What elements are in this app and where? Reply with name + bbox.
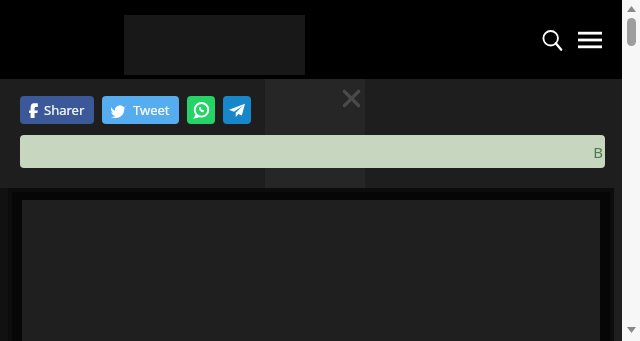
staticText: B: [593, 142, 603, 162]
button[interactable]: Menu: [572, 22, 608, 58]
button[interactable]: Close: [336, 83, 366, 113]
staticText: Tweet: [133, 101, 170, 119]
staticText: Sharer: [44, 101, 85, 119]
button[interactable]: Tweet: [102, 96, 179, 124]
button[interactable]: B: [20, 135, 605, 168]
button[interactable]: Share on Telegram: [223, 96, 251, 124]
button[interactable]: Share on WhatsApp: [187, 96, 215, 124]
button[interactable]: Scroll: [627, 18, 636, 46]
button[interactable]: Sharer: [20, 96, 94, 124]
button[interactable]: Search: [534, 22, 570, 58]
